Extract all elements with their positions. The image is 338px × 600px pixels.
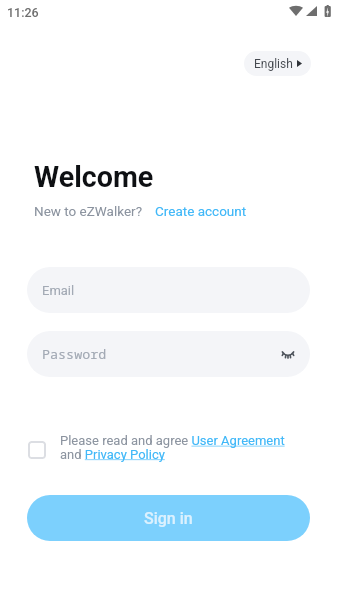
staticText: Sign in xyxy=(144,509,193,528)
staticText: Password xyxy=(42,345,107,363)
staticText: Welcome xyxy=(34,160,154,194)
staticText: New to eZWalker? xyxy=(34,203,143,219)
staticText: Please read and agree User Agreement and… xyxy=(60,433,290,462)
button[interactable]: Show password xyxy=(276,342,300,366)
staticText: Email xyxy=(42,283,75,298)
staticText: 11:26 xyxy=(7,5,39,20)
button[interactable]: Password xyxy=(27,331,310,377)
button[interactable]: Sign in xyxy=(27,495,310,541)
button[interactable]: Email xyxy=(27,267,310,313)
button[interactable]: English xyxy=(244,51,311,76)
staticText: English xyxy=(254,57,293,71)
button[interactable]: Create account xyxy=(155,203,247,219)
button[interactable]: Agree to terms xyxy=(28,441,46,459)
